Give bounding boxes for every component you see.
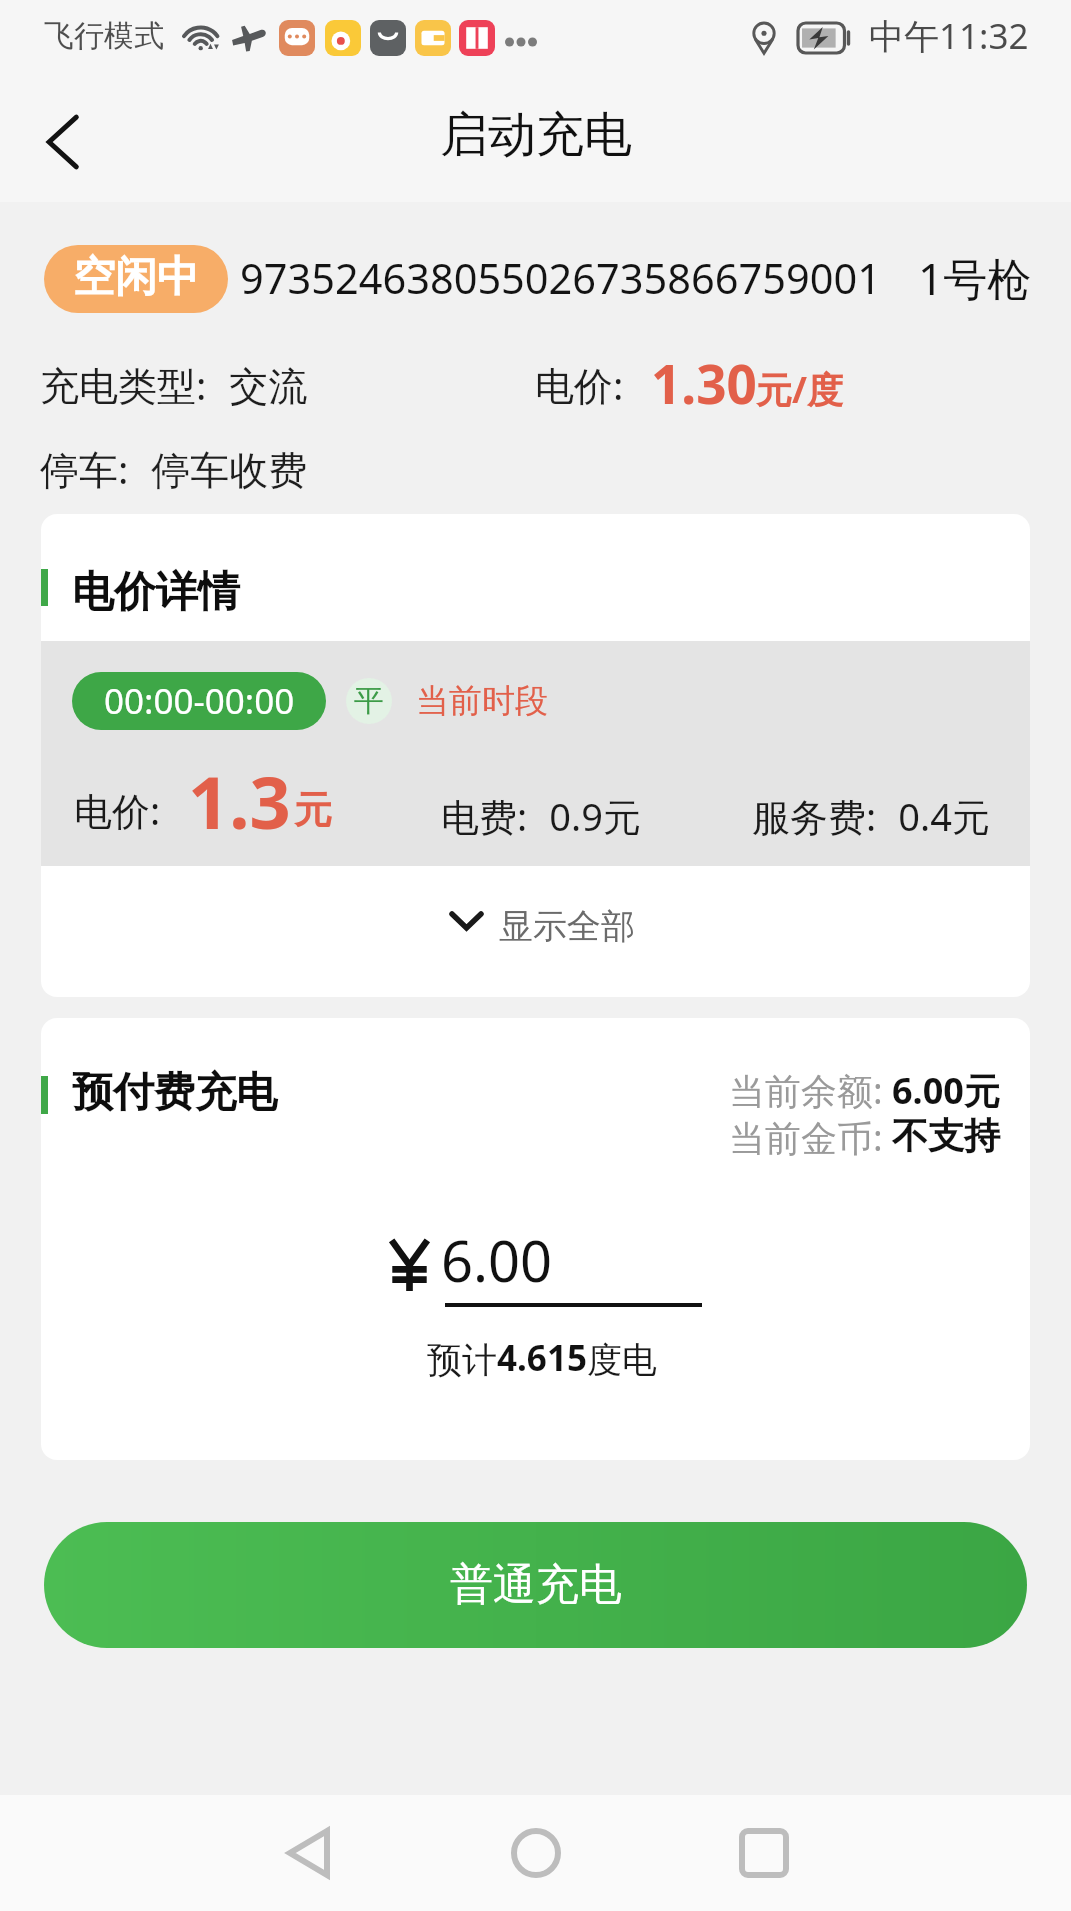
staticText: 飞行模式: [44, 17, 164, 55]
staticText: 预付费充电: [72, 1067, 277, 1119]
button[interactable]: Back: [194, 1795, 422, 1911]
staticText: 电费: 0.9元: [441, 790, 641, 842]
staticText: 显示全部: [499, 905, 635, 948]
button[interactable]: 空闲中: [44, 245, 228, 313]
staticText: 普通充电: [450, 1558, 622, 1612]
staticText: 4.615: [497, 1334, 587, 1382]
staticText: 预计: [427, 1338, 497, 1382]
staticText: 00:00-00:00: [104, 677, 295, 725]
staticText: 启动充电: [440, 105, 632, 165]
staticText: 空闲中: [73, 251, 199, 304]
staticText: 当前时段: [416, 680, 548, 722]
staticText: 1号枪: [918, 248, 1032, 308]
button[interactable]: 00:00-00:00: [72, 672, 326, 730]
button[interactable]: Back: [16, 95, 110, 189]
staticText: 度电: [587, 1338, 657, 1382]
staticText: 973524638055026735866759001: [240, 250, 881, 307]
staticText: 1.30: [651, 347, 757, 419]
button[interactable]: 显示全部: [41, 866, 1030, 997]
staticText: 电价:: [535, 358, 647, 411]
staticText: 服务费: 0.4元: [752, 790, 990, 842]
button[interactable]: 普通充电: [44, 1522, 1027, 1648]
staticText: 电价详情: [72, 566, 240, 619]
staticText: 元/度: [756, 365, 843, 414]
staticText: 1.3: [188, 752, 291, 838]
staticText: 当前余额:: [729, 1066, 892, 1115]
staticText: 平: [354, 682, 384, 720]
button[interactable]: Amount input: [439, 1216, 709, 1311]
staticText: 当前金币:: [729, 1113, 892, 1162]
staticText: 元: [294, 786, 332, 834]
staticText: 不支持: [892, 1113, 1000, 1158]
button[interactable]: Recents: [650, 1795, 878, 1911]
button[interactable]: Home: [422, 1795, 650, 1911]
staticText: 6.00: [441, 1222, 553, 1298]
staticText: 中午11:32: [869, 12, 1029, 60]
staticText: 6.00元: [892, 1066, 1000, 1115]
staticText: 电价:: [74, 784, 183, 836]
staticText: 充电类型: 交流: [40, 358, 308, 411]
staticText: 停车: 停车收费: [40, 442, 308, 492]
